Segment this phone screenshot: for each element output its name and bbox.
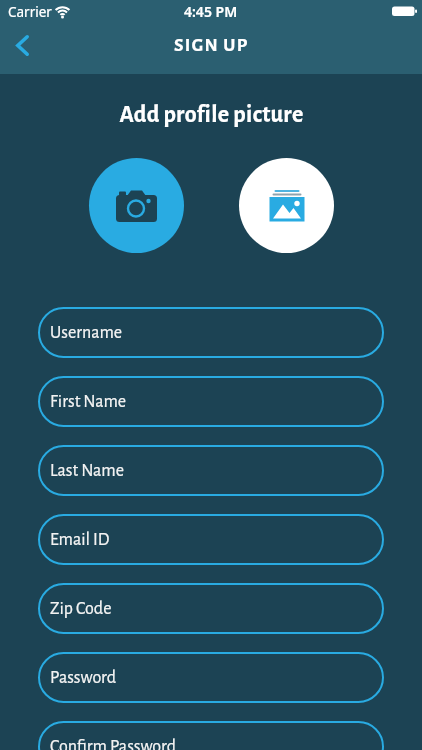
button[interactable]: Password xyxy=(38,652,384,703)
button[interactable]: Email ID xyxy=(38,514,384,565)
button[interactable]: Last Name xyxy=(38,445,384,496)
staticText: First Name xyxy=(50,393,127,411)
button[interactable]: First Name xyxy=(38,376,384,427)
button[interactable]: Confirm Password xyxy=(38,721,384,750)
button[interactable] xyxy=(0,23,44,67)
staticText: Password xyxy=(50,669,117,687)
staticText: SIGN UP xyxy=(174,36,249,55)
staticText: Carrier xyxy=(8,3,52,21)
staticText: Username xyxy=(50,324,123,342)
button[interactable]: Zip Code xyxy=(38,583,384,634)
staticText: Last Name xyxy=(50,462,124,480)
button[interactable] xyxy=(89,158,184,253)
staticText: Zip Code xyxy=(50,600,112,618)
staticText: Email ID xyxy=(50,531,110,549)
button[interactable] xyxy=(239,158,334,253)
staticText: 4:45 PM xyxy=(184,2,238,21)
staticText: Add profile picture xyxy=(119,103,304,127)
button[interactable]: Username xyxy=(38,307,384,358)
staticText: Confirm Password xyxy=(50,738,177,750)
